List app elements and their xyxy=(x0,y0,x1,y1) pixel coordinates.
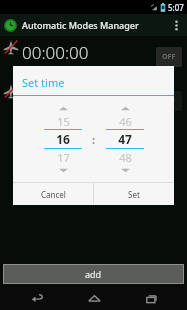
button[interactable]: Cancel xyxy=(13,183,93,205)
staticText: Set xyxy=(128,189,140,200)
button[interactable]: Set xyxy=(94,183,174,205)
staticText: OFF xyxy=(162,52,176,62)
button[interactable]: 00:00:00 xyxy=(0,36,187,78)
staticText: 00:00:00 xyxy=(22,41,89,64)
staticText: 17 xyxy=(57,150,70,165)
button[interactable]: More options xyxy=(169,14,183,36)
button[interactable]: 00:00:00 xyxy=(0,80,187,122)
staticText: 15 xyxy=(57,114,70,129)
staticText: 5:07 xyxy=(168,2,184,13)
staticText: Set time xyxy=(22,75,65,90)
staticText: 46 xyxy=(119,114,132,129)
staticText: 47 xyxy=(118,131,132,147)
staticText: WED xyxy=(55,110,69,118)
staticText: 16 xyxy=(56,131,70,147)
staticText: OFF xyxy=(162,96,176,106)
button[interactable]: Back xyxy=(17,286,57,310)
staticText: 48 xyxy=(119,150,132,165)
button[interactable]: Recents xyxy=(130,286,170,310)
button[interactable]: OFF xyxy=(156,91,182,111)
button[interactable]: Decrement xyxy=(113,165,137,175)
button[interactable]: Increment xyxy=(113,103,137,113)
button[interactable]: Decrement xyxy=(51,165,75,175)
staticText: 00:00:00 xyxy=(22,85,89,108)
button[interactable]: OFF xyxy=(156,47,182,67)
staticText: Automatic Modes Manager xyxy=(22,19,139,31)
staticText: Cancel xyxy=(41,189,66,200)
staticText: SUN xyxy=(114,110,127,118)
staticText: add xyxy=(85,268,102,280)
button[interactable]: Home xyxy=(74,286,114,310)
staticText: : xyxy=(92,132,96,147)
button[interactable]: add xyxy=(4,265,183,283)
button[interactable]: Increment xyxy=(51,103,75,113)
